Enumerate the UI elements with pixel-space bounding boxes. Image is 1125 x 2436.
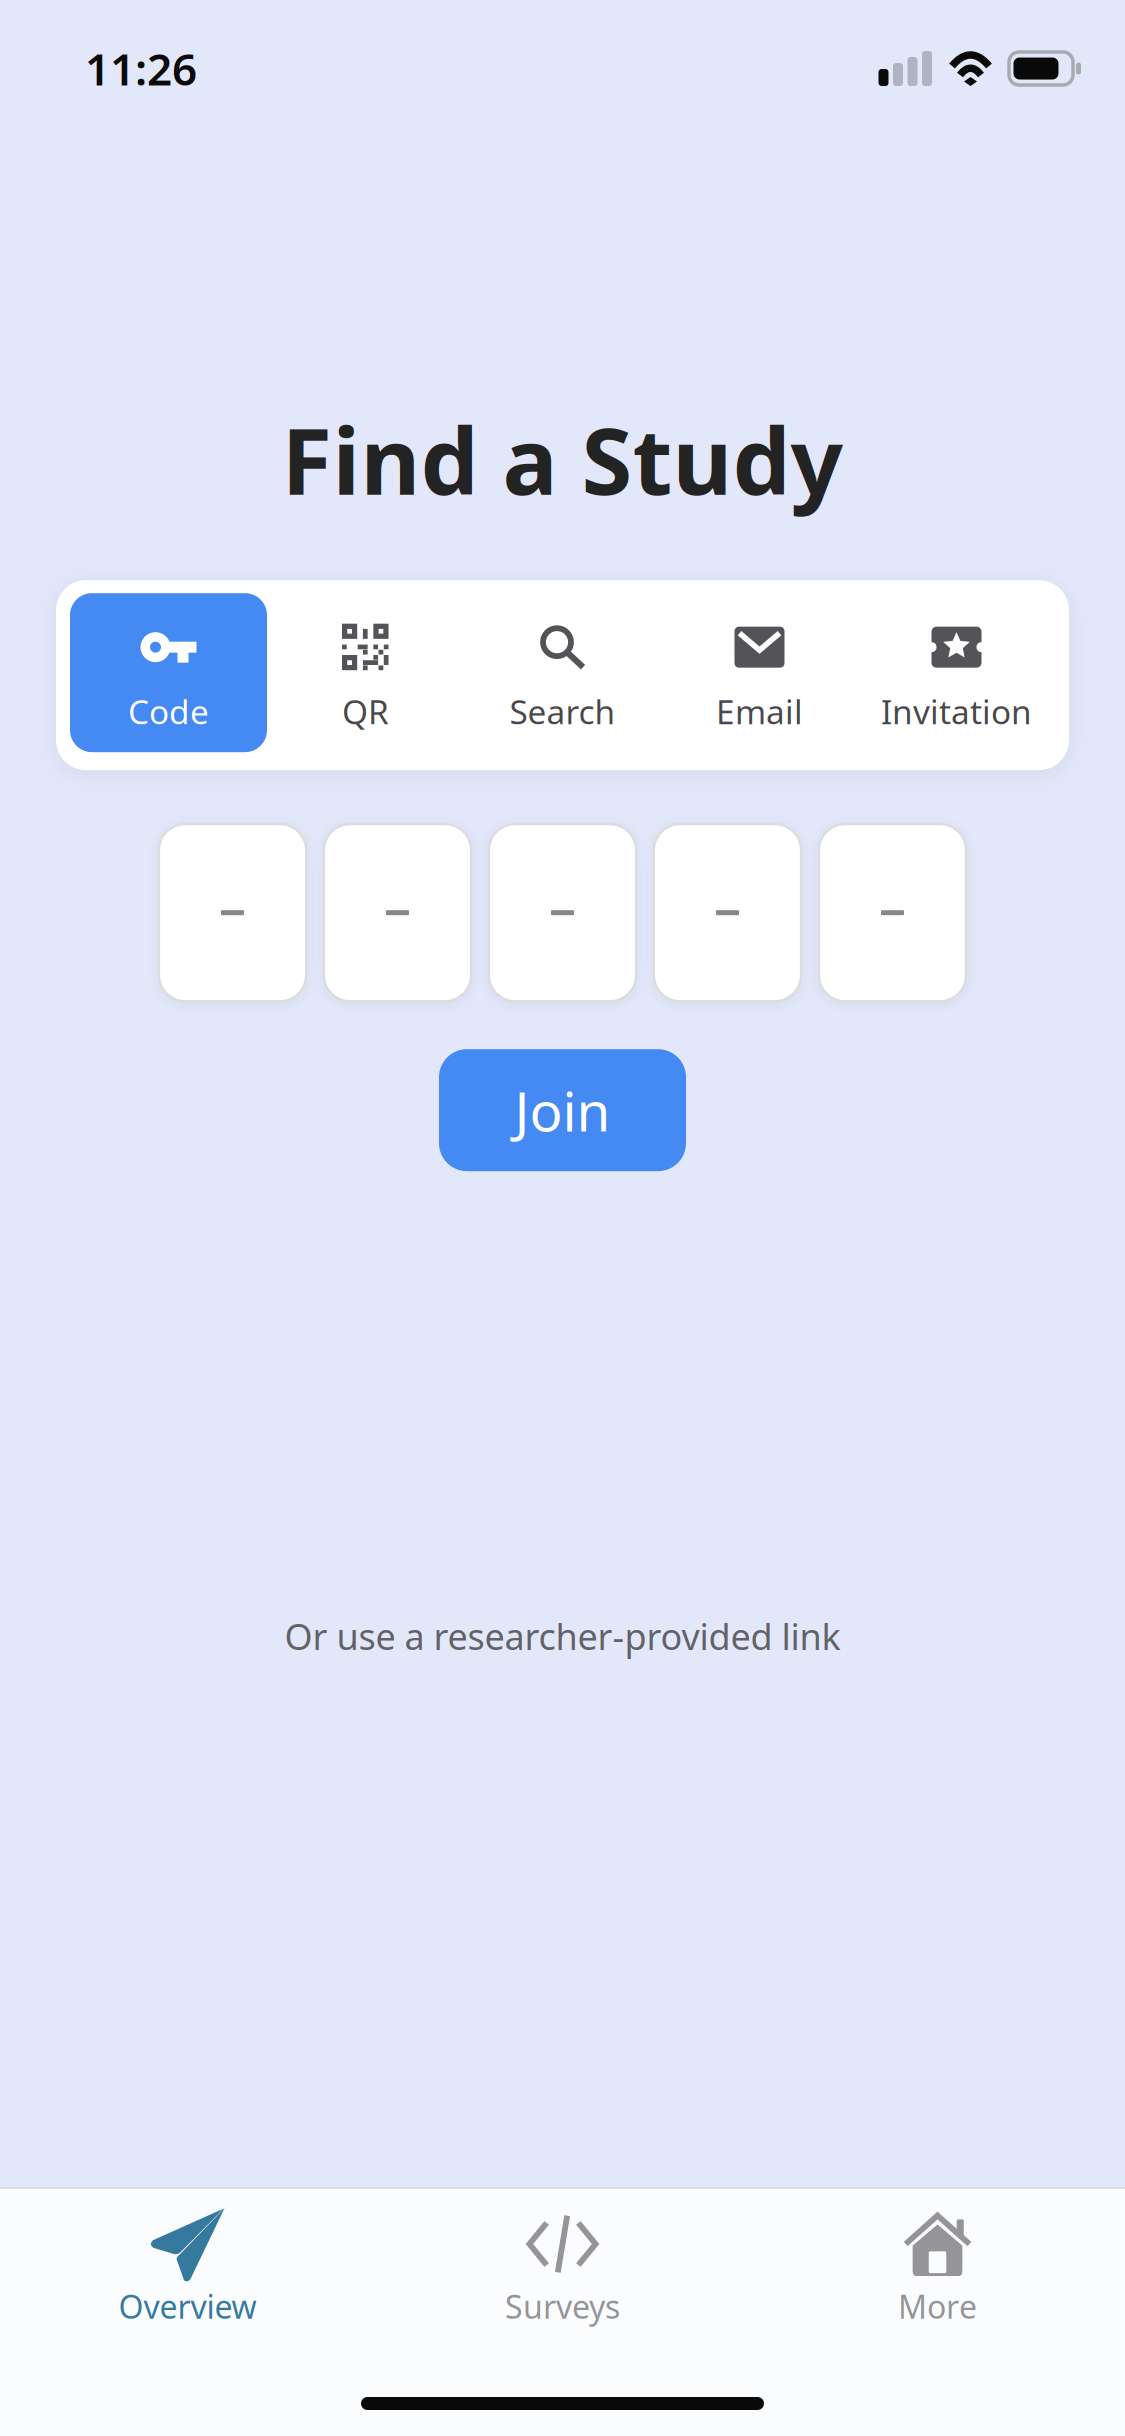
staticText: Search — [509, 689, 615, 733]
button[interactable]: Invitation — [858, 593, 1055, 752]
staticText: Overview — [118, 2285, 256, 2327]
button[interactable]: Surveys — [375, 2189, 750, 2349]
button[interactable]: More — [750, 2189, 1125, 2349]
staticText: More — [898, 2285, 977, 2327]
button[interactable]: Overview — [0, 2189, 375, 2349]
staticText: Join — [514, 1074, 610, 1146]
staticText: Find a Study — [281, 398, 843, 520]
staticText: QR — [342, 689, 389, 733]
staticText: 11:26 — [85, 39, 197, 98]
button[interactable]: Search — [464, 593, 661, 752]
staticText: Email — [716, 689, 803, 733]
button[interactable]: QR — [267, 593, 464, 752]
staticText: Invitation — [881, 689, 1032, 733]
button[interactable]: Email — [661, 593, 858, 752]
staticText: Code — [128, 689, 209, 733]
staticText: Surveys — [505, 2285, 620, 2327]
staticText: Or use a researcher-provided link — [284, 1612, 840, 1660]
button[interactable]: Join — [439, 1049, 686, 1171]
button[interactable]: Code — [70, 593, 267, 752]
